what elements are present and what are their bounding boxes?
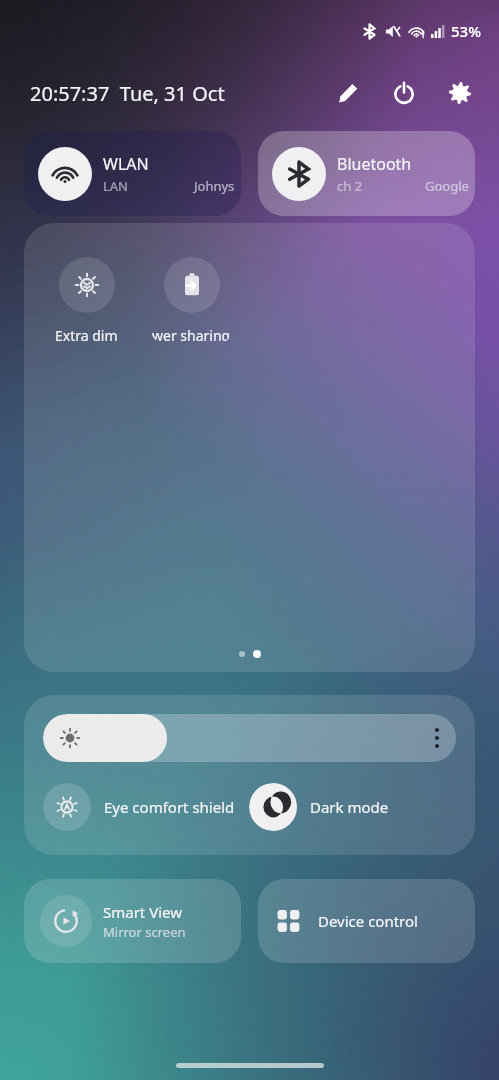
staticText: LAN xyxy=(103,177,128,195)
button[interactable]: Brightness xyxy=(43,714,456,762)
button[interactable]: WLAN xyxy=(24,131,241,216)
staticText: Device control xyxy=(318,911,418,931)
button[interactable]: Brightness options xyxy=(435,728,439,748)
staticText: Johnys xyxy=(194,177,235,195)
staticText: wer sharing xyxy=(152,326,231,345)
staticText: 20:57:37 Tue, 31 Oct xyxy=(30,80,225,107)
staticText: Eye comfort shield xyxy=(104,797,235,817)
button[interactable]: Smart View xyxy=(24,879,241,963)
button[interactable]: Eye comfort shield xyxy=(43,783,249,831)
button[interactable]: Edit xyxy=(333,78,363,108)
button[interactable]: Extra dim xyxy=(44,257,129,345)
button[interactable]: Power xyxy=(389,78,419,108)
staticText: ch 2 xyxy=(337,177,363,195)
button[interactable]: wer sharing xyxy=(149,257,234,345)
button[interactable]: Device control xyxy=(258,879,475,963)
staticText: WLAN xyxy=(103,153,149,175)
staticText: Mirror screen xyxy=(103,923,186,941)
button[interactable]: Settings xyxy=(445,78,475,108)
button[interactable]: Bluetooth xyxy=(258,131,475,216)
staticText: Smart View xyxy=(103,902,183,922)
staticText: Google xyxy=(425,177,469,195)
staticText: 53% xyxy=(451,21,481,41)
staticText: Bluetooth xyxy=(337,153,412,175)
button[interactable]: Dark mode xyxy=(249,783,475,831)
staticText: Dark mode xyxy=(310,797,389,817)
staticText: Extra dim xyxy=(55,326,118,345)
